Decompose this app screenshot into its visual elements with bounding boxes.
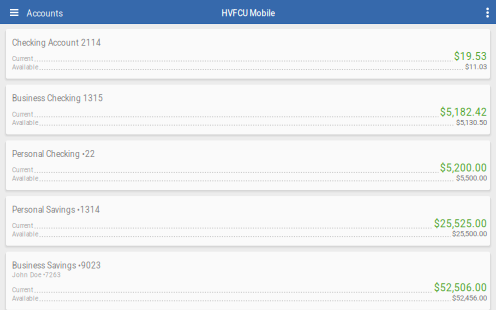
staticText: $5,182.42	[440, 106, 487, 118]
button[interactable]: Checking Account 2114	[6, 29, 490, 79]
button[interactable]: Personal Savings •1314	[6, 196, 490, 246]
button[interactable]: Personal Checking •22	[6, 140, 490, 190]
staticText: $5,500.00	[456, 174, 487, 182]
button[interactable]: Business Checking 1315	[6, 85, 490, 134]
staticText: Available	[12, 230, 38, 238]
staticText: $52,506.00	[434, 282, 487, 294]
staticText: $5,130.50	[456, 118, 487, 127]
staticText: Personal Savings •1314	[12, 205, 100, 215]
button[interactable]: More options	[477, 0, 496, 23]
staticText: Available	[12, 295, 38, 302]
staticText: $5,200.00	[440, 162, 487, 174]
staticText: Business Checking 1315	[12, 94, 103, 103]
staticText: Available	[12, 119, 38, 127]
staticText: $25,500.00	[452, 229, 487, 238]
staticText: Available	[12, 63, 38, 71]
staticText: Accounts	[26, 8, 62, 18]
staticText: $19.53	[454, 51, 487, 62]
staticText: Current	[12, 222, 33, 230]
staticText: $52,456.00	[452, 294, 487, 302]
staticText: John Doe •7263	[12, 271, 61, 279]
staticText: $25,525.00	[434, 218, 487, 230]
staticText: Current	[12, 166, 33, 174]
staticText: Current	[12, 55, 33, 62]
button[interactable]: Accounts	[0, 0, 68, 23]
staticText: Current	[12, 111, 33, 118]
staticText: Business Savings •9023	[12, 261, 101, 270]
staticText: Checking Account 2114	[12, 38, 101, 48]
staticText: HVFCU Mobile	[221, 9, 274, 18]
staticText: Available	[12, 175, 38, 182]
staticText: Current	[12, 286, 33, 294]
button[interactable]: Business Savings •9023	[6, 252, 490, 310]
staticText: Personal Checking •22	[12, 149, 95, 159]
staticText: $11.03	[465, 62, 487, 71]
